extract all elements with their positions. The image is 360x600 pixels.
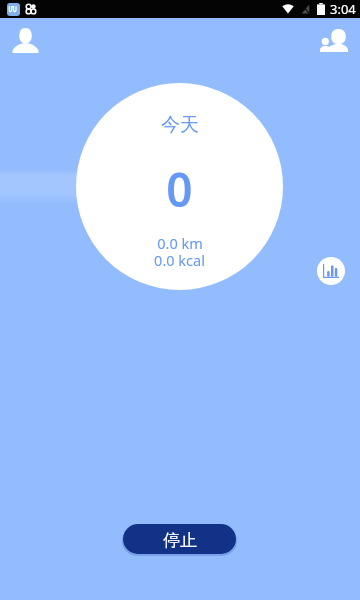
- staticText: 0: [166, 158, 193, 221]
- button[interactable]: Statistics: [317, 257, 345, 285]
- button[interactable]: My profile: [5, 20, 45, 60]
- staticText: 0.0 kcal: [154, 250, 205, 270]
- button[interactable]: Friends: [314, 20, 354, 60]
- button[interactable]: 今天: [76, 83, 283, 290]
- staticText: 3:04: [330, 0, 356, 18]
- staticText: 今天: [161, 113, 199, 137]
- button[interactable]: 停止: [123, 524, 236, 554]
- staticText: 0.0 km: [157, 233, 203, 253]
- staticText: 停止: [163, 530, 197, 551]
